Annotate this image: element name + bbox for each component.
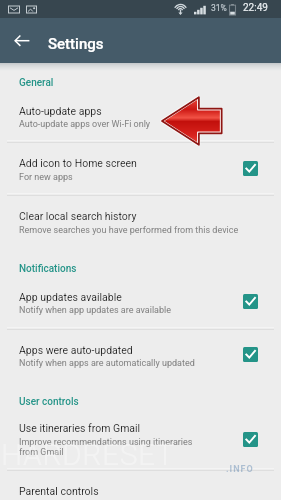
staticText: Clear local search history xyxy=(19,210,137,222)
button[interactable]: Toggle setting xyxy=(243,161,258,176)
staticText: Notify when app updates are available xyxy=(19,305,239,316)
button[interactable] xyxy=(0,412,281,470)
staticText: HARDRESET xyxy=(1,437,175,472)
button[interactable] xyxy=(0,470,281,500)
staticText: User controls xyxy=(19,396,79,408)
button[interactable] xyxy=(0,329,281,381)
staticText: Notify when apps are automatically updat… xyxy=(19,358,239,369)
button[interactable]: Toggle setting xyxy=(243,294,258,309)
staticText: App updates available xyxy=(19,291,122,303)
button[interactable]: Toggle setting xyxy=(243,347,258,362)
staticText: 31% xyxy=(211,3,227,13)
button[interactable]: Toggle setting xyxy=(243,432,258,447)
staticText: .INFO xyxy=(226,464,254,475)
staticText: General xyxy=(19,77,54,89)
staticText: Improve recommendations using itinerarie… xyxy=(19,437,211,457)
button[interactable] xyxy=(0,94,281,141)
button[interactable]: Notifications xyxy=(19,263,77,275)
staticText: Use itineraries from Gmail xyxy=(19,422,141,434)
staticText: Notifications xyxy=(19,263,77,275)
staticText: Apps were auto-updated xyxy=(19,344,133,356)
staticText: Auto-update apps xyxy=(19,105,102,117)
staticText: Auto-update apps over Wi-Fi only xyxy=(19,119,249,130)
staticText: Remove searches you have performed from … xyxy=(19,225,264,236)
staticText: 22:49 xyxy=(243,2,268,14)
button[interactable]: General xyxy=(19,77,54,89)
button[interactable]: Back xyxy=(7,25,37,55)
button[interactable] xyxy=(0,195,281,245)
button[interactable] xyxy=(0,142,281,195)
staticText: For new apps xyxy=(19,172,239,183)
staticText: Settings xyxy=(48,35,104,53)
staticText: Add icon to Home screen xyxy=(19,157,137,169)
button[interactable]: User controls xyxy=(19,396,79,408)
staticText: Parental controls xyxy=(19,485,99,497)
button[interactable] xyxy=(0,281,281,328)
